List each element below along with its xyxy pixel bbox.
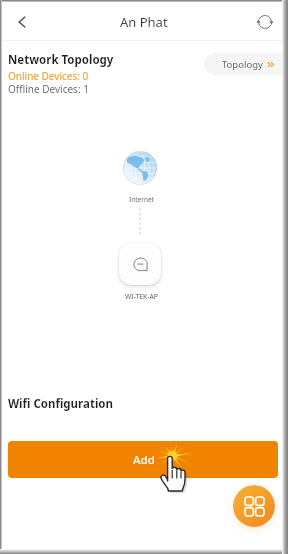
staticText: Topology (222, 58, 263, 71)
staticText: WI-TEK-AP (125, 292, 158, 301)
staticText: Add (133, 452, 155, 468)
button[interactable]: WI-TEK-AP device (119, 243, 161, 285)
button[interactable]: Add (8, 441, 278, 478)
staticText: Wifi Configuration (8, 396, 113, 412)
button[interactable]: Refresh (252, 9, 278, 35)
button[interactable]: Topology (204, 53, 288, 75)
staticText: Online Devices: 0 (8, 69, 89, 83)
button[interactable]: Back (9, 9, 35, 35)
staticText: Offline Devices: 1 (8, 82, 89, 96)
button[interactable]: Apps menu (233, 485, 275, 527)
staticText: An Phat (120, 13, 168, 31)
staticText: Network Topology (8, 52, 114, 68)
staticText: Internet (129, 195, 154, 204)
